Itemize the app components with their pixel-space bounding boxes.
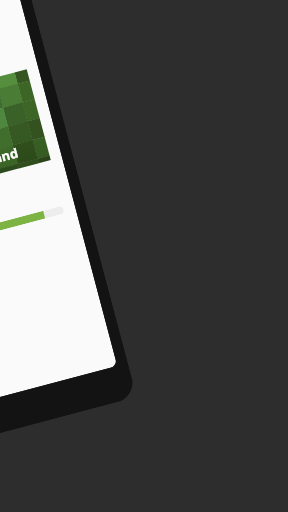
button[interactable]: Evergreen Woodland	[0, 69, 50, 205]
staticText: Evergreen Woodland	[0, 143, 21, 195]
